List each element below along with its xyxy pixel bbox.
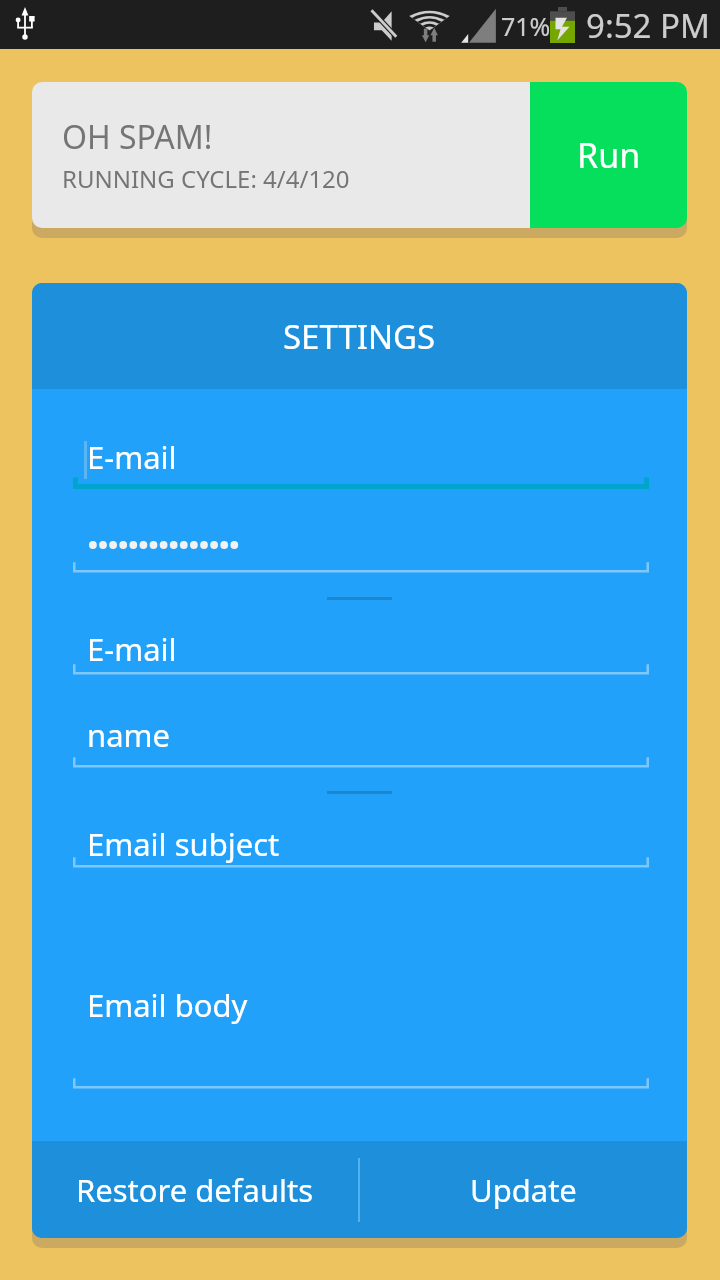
staticText: Restore defaults: [76, 1169, 314, 1211]
button[interactable]: Update: [360, 1141, 687, 1238]
staticText: name: [87, 714, 171, 756]
other: Wi-Fi connected: [410, 4, 449, 45]
staticText: E-mail: [87, 628, 177, 670]
button[interactable]: OH SPAM!: [32, 82, 530, 228]
staticText: E-mail: [87, 436, 177, 478]
staticText: Run: [577, 132, 641, 178]
button[interactable]: E-mail: [73, 622, 649, 677]
button[interactable]: E-mail: [73, 430, 649, 489]
button[interactable]: Email body: [73, 978, 649, 1091]
staticText: Update: [470, 1169, 577, 1211]
staticText: 9:52 PM: [586, 3, 710, 48]
other: Battery charging 71 percent: [550, 7, 575, 43]
staticText: SETTINGS: [283, 314, 436, 359]
other: USB connected: [12, 6, 38, 43]
other: Cellular signal: [460, 6, 499, 46]
other: Sound muted: [369, 8, 400, 44]
staticText: RUNNING CYCLE: 4/4/120: [62, 162, 350, 195]
button[interactable]: name: [73, 708, 649, 770]
button[interactable]: [73, 524, 649, 575]
staticText: 71%: [501, 9, 551, 43]
button[interactable]: Restore defaults: [32, 1141, 358, 1238]
button[interactable]: Run: [530, 82, 687, 228]
staticText: Email body: [87, 984, 248, 1026]
staticText: Email subject: [87, 823, 280, 865]
staticText: OH SPAM!: [62, 115, 213, 159]
button[interactable]: Email subject: [73, 817, 649, 870]
